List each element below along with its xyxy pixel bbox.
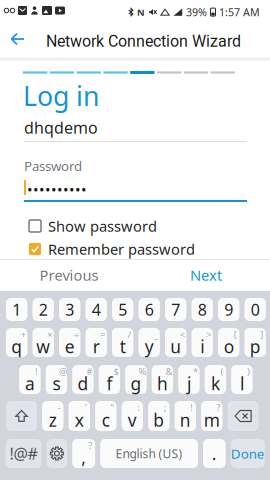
button[interactable]: English (US) <box>100 439 198 468</box>
staticText: q <box>11 335 22 358</box>
staticText: 0 <box>251 299 260 320</box>
staticText: ? <box>216 401 220 414</box>
button[interactable]: @ <box>46 365 67 394</box>
staticText: ( <box>220 365 223 378</box>
button[interactable]: ! <box>19 365 41 394</box>
button[interactable] <box>6 401 37 431</box>
staticText: 6 <box>145 299 154 320</box>
staticText: : <box>137 401 140 414</box>
button[interactable]: $ <box>99 365 120 394</box>
button[interactable]: Next <box>176 260 236 290</box>
staticText: r <box>93 335 100 358</box>
button[interactable]: 3 <box>59 298 80 321</box>
staticText: 4 <box>92 299 101 320</box>
staticText: > <box>206 328 211 341</box>
staticText: b <box>153 408 164 431</box>
button[interactable]: > <box>191 328 213 357</box>
staticText: 1:57 AM <box>219 5 260 19</box>
button[interactable]: Previous <box>33 260 105 290</box>
button[interactable]: . <box>203 439 226 468</box>
staticText: n <box>180 408 191 431</box>
staticText: Next <box>190 265 222 285</box>
staticText: Show password <box>48 216 157 236</box>
button[interactable]: 6 <box>138 298 160 321</box>
button[interactable]: + <box>6 328 27 357</box>
button[interactable]: & <box>152 365 173 394</box>
button[interactable]: 8 <box>191 298 213 321</box>
button[interactable]: !@# <box>6 439 42 468</box>
staticText: N <box>137 6 145 18</box>
staticText: Password <box>24 157 82 175</box>
button[interactable]: [ <box>218 328 239 357</box>
staticText: u <box>170 335 181 358</box>
staticText: - <box>58 401 61 414</box>
staticText: . <box>212 442 217 465</box>
staticText: dhqdemo <box>24 117 98 138</box>
button[interactable]: Show password <box>29 217 199 235</box>
button[interactable]: ) <box>231 365 253 394</box>
button[interactable]: 4 <box>85 298 107 321</box>
staticText: l <box>240 372 244 395</box>
button[interactable]: Back <box>0 20 34 58</box>
button[interactable]: < <box>165 328 186 357</box>
button[interactable]: 9 <box>218 298 239 321</box>
button[interactable]: ! <box>175 401 196 431</box>
button[interactable]: ? <box>72 439 95 468</box>
staticText: ? <box>88 439 92 452</box>
button[interactable]: * <box>178 365 200 394</box>
staticText: i <box>200 335 204 358</box>
button[interactable]: ] <box>244 328 266 357</box>
staticText: ! <box>35 365 38 378</box>
button[interactable]: # <box>72 365 94 394</box>
button[interactable]: ; <box>148 401 169 431</box>
staticText: @ <box>59 365 67 378</box>
button[interactable]: ( <box>205 365 226 394</box>
staticText: ; <box>164 401 167 414</box>
button[interactable]: 1 <box>6 298 27 321</box>
staticText: × <box>47 328 52 341</box>
staticText: m <box>204 408 220 431</box>
button[interactable]: _ <box>138 328 160 357</box>
button[interactable]: : <box>122 401 143 431</box>
staticText: e <box>65 335 75 358</box>
staticText: < <box>180 328 185 341</box>
staticText: 5 <box>118 299 127 320</box>
staticText: _ <box>154 328 158 341</box>
button[interactable] <box>228 401 259 431</box>
button[interactable]: 5 <box>112 298 133 321</box>
staticText: 39% <box>186 5 207 19</box>
button[interactable]: - <box>42 401 63 431</box>
button[interactable]: ' <box>69 401 90 431</box>
staticText: [ <box>234 328 237 341</box>
staticText: 8 <box>198 299 207 320</box>
button[interactable]: " <box>95 401 116 431</box>
staticText: / <box>128 328 131 341</box>
staticText: Previous <box>39 265 98 285</box>
staticText: p <box>250 335 261 358</box>
staticText: j <box>187 372 191 395</box>
button[interactable]: Done <box>231 439 265 468</box>
staticText: ÷ <box>74 328 79 341</box>
button[interactable]: 2 <box>32 298 54 321</box>
staticText: k <box>211 372 220 395</box>
staticText: c <box>102 408 110 431</box>
button[interactable]: Remember password <box>29 240 209 258</box>
staticText: v <box>128 408 137 431</box>
staticText: + <box>21 328 26 341</box>
staticText: Network Connection Wizard <box>46 32 241 51</box>
button[interactable]: % <box>125 365 147 394</box>
staticText: * <box>193 365 198 378</box>
button[interactable]: 0 <box>244 298 266 321</box>
button[interactable]: ÷ <box>59 328 80 357</box>
button[interactable]: × <box>32 328 54 357</box>
button[interactable]: 7 <box>165 298 186 321</box>
staticText: y <box>145 335 154 358</box>
staticText: Remember password <box>48 239 195 259</box>
staticText: x <box>75 408 84 431</box>
button[interactable]: = <box>85 328 107 357</box>
staticText: Log in <box>23 78 99 113</box>
button[interactable]: ? <box>201 401 222 431</box>
staticText: 7 <box>171 299 180 320</box>
button[interactable] <box>47 439 67 468</box>
button[interactable]: / <box>112 328 133 357</box>
